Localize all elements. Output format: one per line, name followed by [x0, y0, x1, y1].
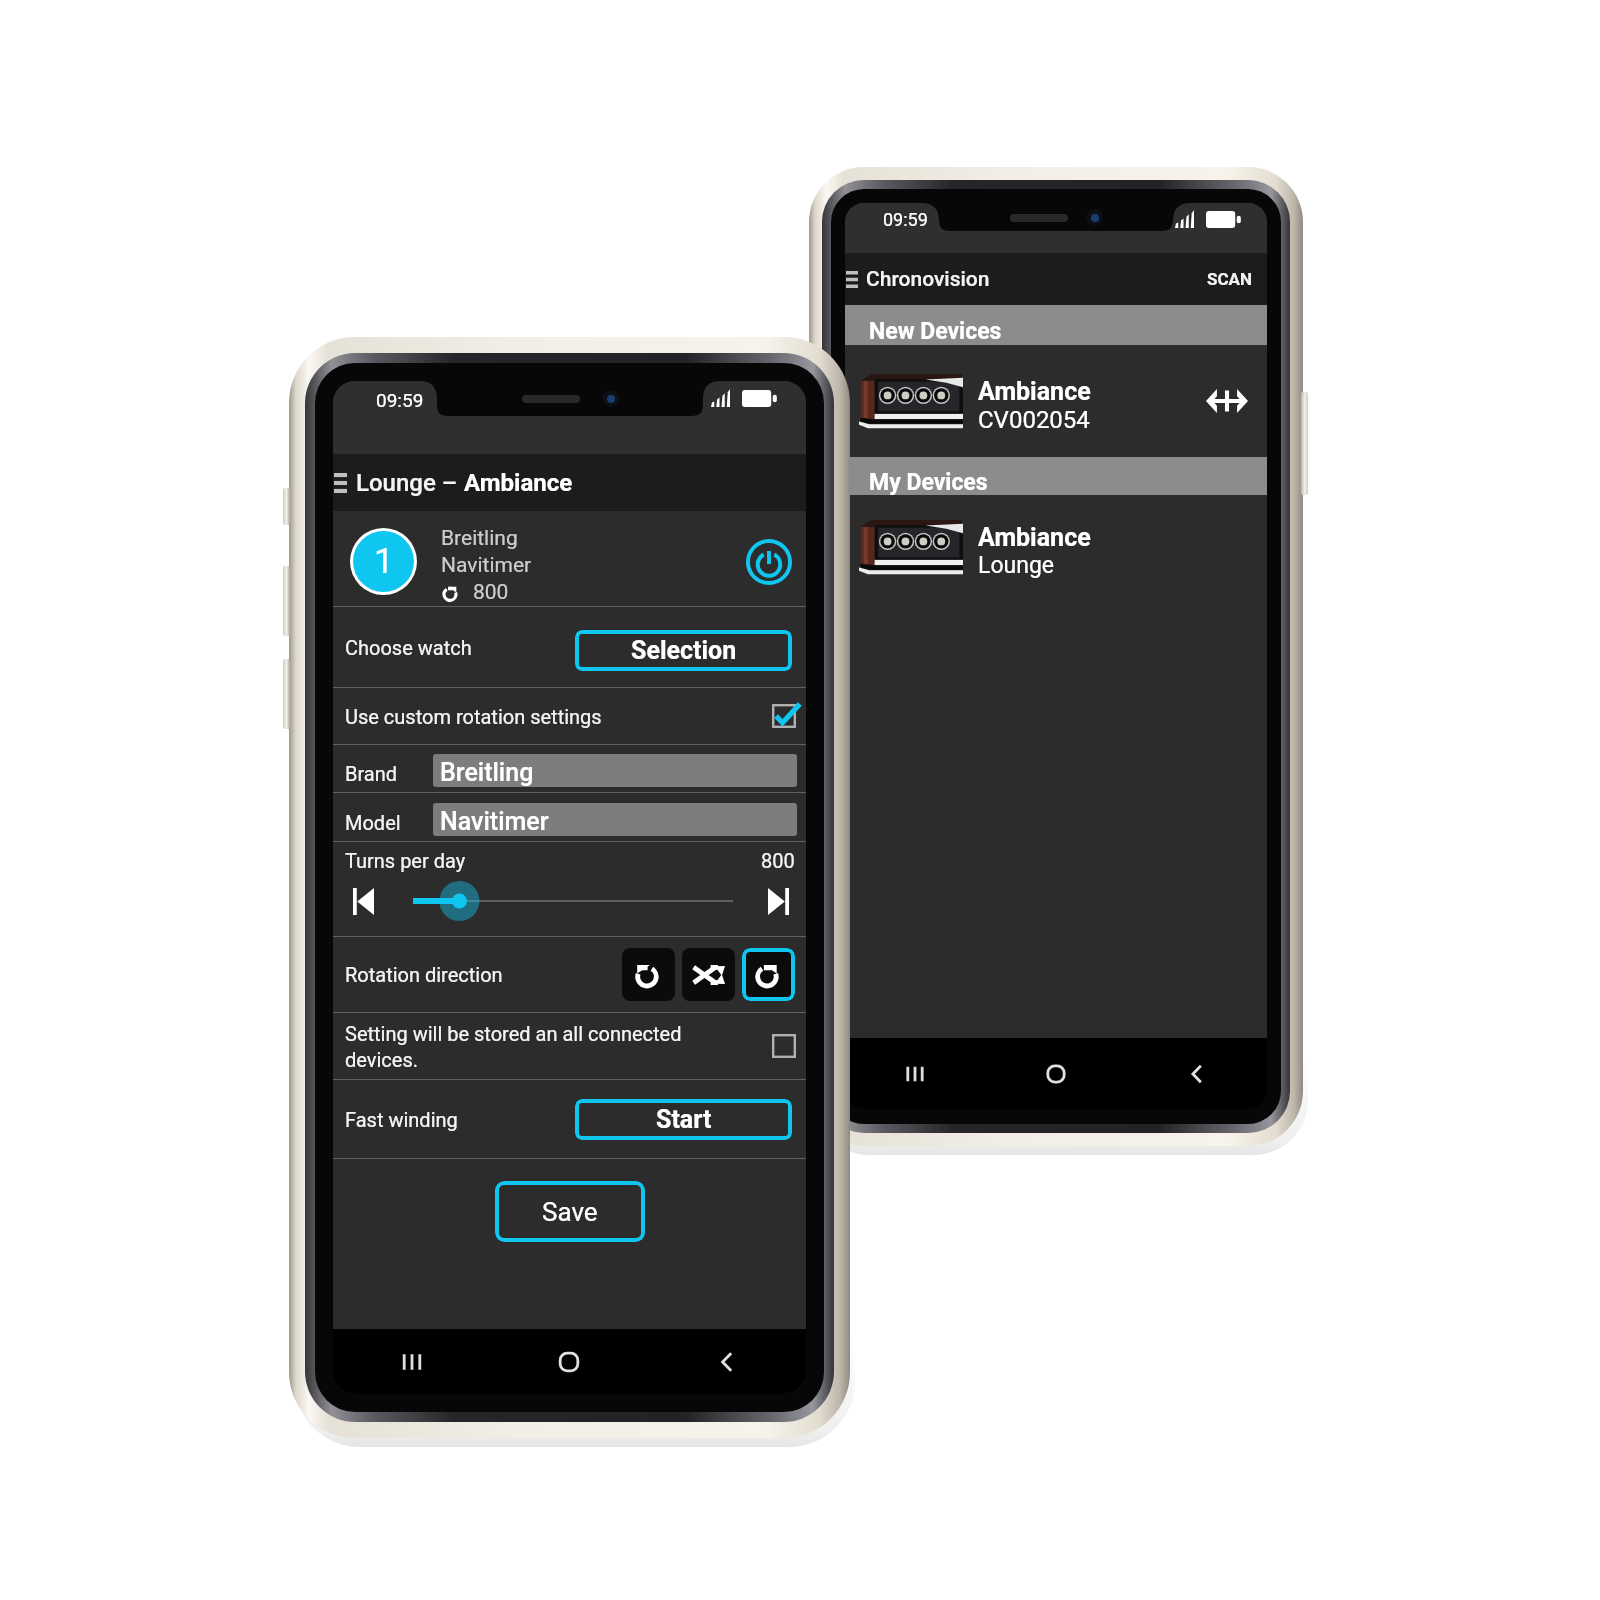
staticText: Setting will be stored an all connected … [345, 1022, 756, 1071]
button[interactable]: Back [1126, 1038, 1267, 1110]
button[interactable]: Counter-clockwise [622, 948, 675, 1001]
staticText: Navitimer [440, 807, 549, 836]
staticText: Brand [345, 762, 398, 785]
button[interactable]: Save [495, 1181, 645, 1242]
staticText: Breitling [441, 526, 518, 551]
staticText: 800 [761, 849, 795, 872]
button[interactable]: Home [490, 1329, 648, 1394]
staticText: 1 [374, 541, 394, 582]
staticText: Lounge [978, 552, 1054, 579]
staticText: Turns per day [345, 849, 466, 872]
button[interactable]: Clockwise [742, 948, 795, 1001]
button[interactable]: Recent apps [845, 1038, 985, 1110]
staticText: Ambiance [464, 469, 573, 497]
button[interactable]: Ambiance [845, 345, 1267, 457]
staticText: Chronovision [866, 267, 990, 292]
staticText: Selection [631, 636, 737, 665]
button[interactable]: Breitling [433, 754, 797, 787]
staticText: 09:59 [376, 389, 424, 411]
button[interactable]: Power [743, 536, 795, 588]
staticText: Breitling [440, 758, 534, 787]
button[interactable]: Navitimer [433, 803, 797, 836]
staticText: Model [345, 811, 401, 834]
button[interactable]: Home [985, 1038, 1126, 1110]
staticText: New Devices [869, 318, 1002, 345]
button[interactable]: Alternating [682, 948, 735, 1001]
button[interactable]: Increase [767, 885, 789, 917]
button[interactable]: Ambiance [845, 495, 1267, 599]
staticText: My Devices [869, 469, 988, 495]
staticText: Rotation direction [345, 963, 503, 986]
staticText: 09:59 [883, 209, 928, 230]
button[interactable]: Setting will be stored an all connected … [333, 1013, 806, 1079]
staticText: Fast winding [345, 1108, 458, 1131]
staticText: SCAN [1207, 269, 1253, 289]
staticText: Start [656, 1105, 712, 1134]
staticText: Save [542, 1197, 598, 1227]
staticText: Navitimer [441, 553, 532, 578]
staticText: CV002054 [978, 406, 1090, 434]
staticText: Use custom rotation settings [345, 705, 602, 728]
staticText: Ambiance [978, 377, 1091, 406]
staticText: Choose watch [345, 636, 472, 659]
button[interactable]: SCAN [1203, 263, 1257, 295]
button[interactable]: Selection [575, 630, 792, 671]
button[interactable]: 1 [333, 511, 806, 606]
staticText: 800 [473, 580, 509, 605]
staticText: Lounge – [356, 469, 464, 497]
button[interactable]: Recent apps [333, 1329, 490, 1394]
button[interactable]: Connect device [1201, 375, 1253, 427]
button[interactable]: Start [575, 1099, 792, 1140]
button[interactable]: Back [648, 1329, 806, 1394]
staticText: Ambiance [978, 523, 1091, 552]
button[interactable]: Use custom rotation settings [333, 688, 806, 744]
button[interactable]: Decrease [352, 885, 374, 917]
